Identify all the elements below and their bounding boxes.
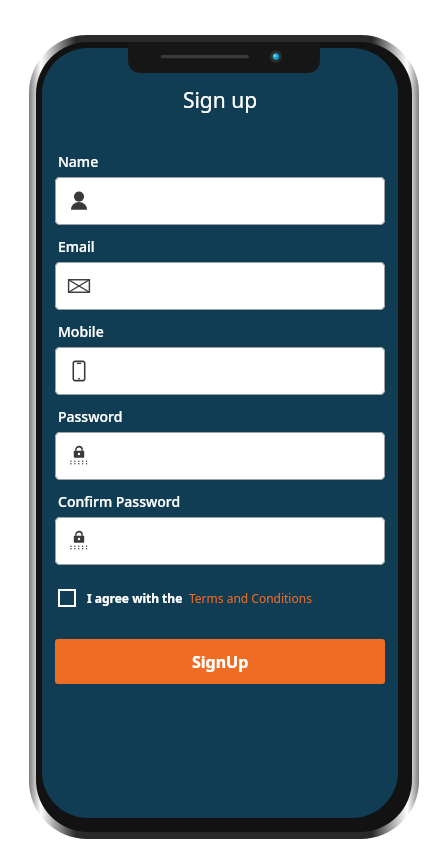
staticText: Mobile [58, 322, 104, 341]
staticText: Password [58, 407, 123, 426]
staticText: I agree with the [87, 590, 183, 606]
button[interactable] [55, 432, 385, 480]
button[interactable] [55, 517, 385, 565]
button[interactable] [55, 347, 385, 395]
button[interactable]: SignUp [55, 639, 385, 684]
staticText: SignUp [192, 651, 249, 673]
button[interactable] [55, 262, 385, 310]
staticText: Confirm Password [58, 492, 181, 511]
button[interactable] [55, 177, 385, 225]
staticText: Sign up [50, 86, 390, 115]
staticText: Name [58, 152, 99, 171]
button[interactable]: Terms and Conditions [189, 590, 312, 606]
button[interactable]: I agree with the [58, 589, 312, 607]
staticText: Email [58, 237, 95, 256]
